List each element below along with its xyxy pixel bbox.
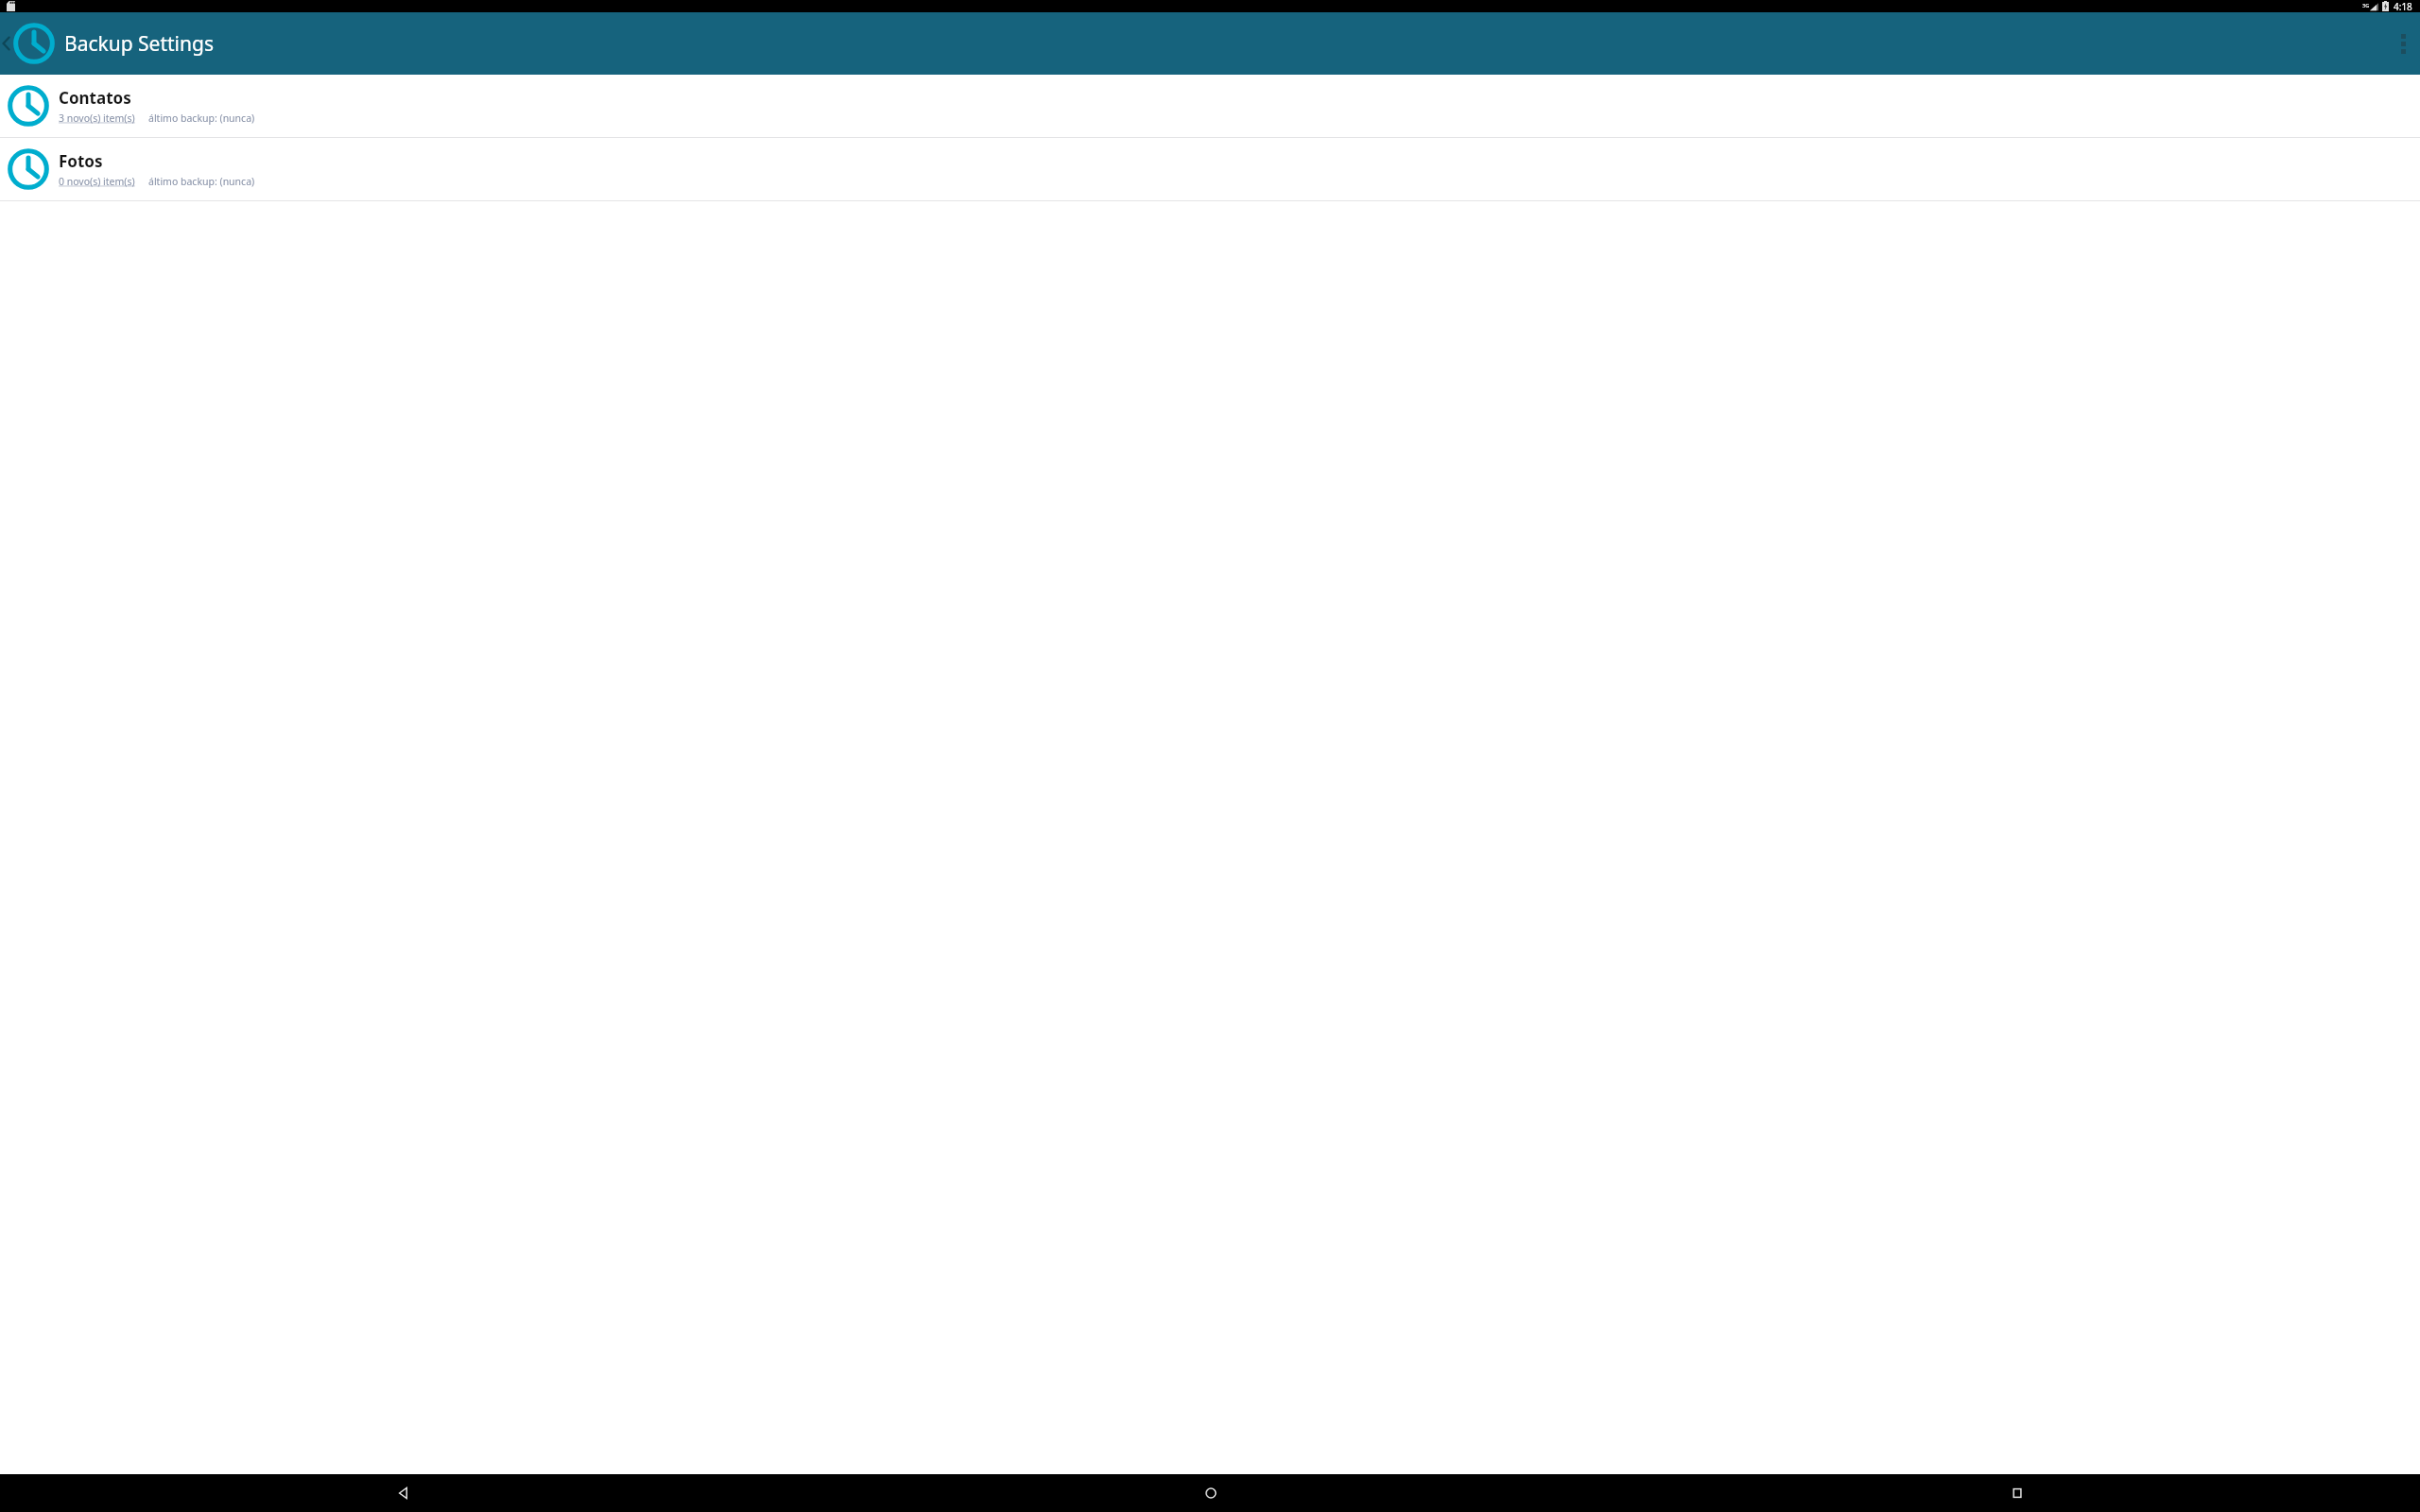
button[interactable]: 3 novo(s) item(s) <box>59 112 135 125</box>
staticText: 4:18 <box>2394 0 2412 12</box>
staticText: Contatos <box>59 87 131 109</box>
button[interactable]: Contatos <box>0 75 2420 137</box>
button[interactable]: Home <box>807 1474 1614 1512</box>
staticText: Backup Settings <box>64 30 214 58</box>
button[interactable]: Recent apps <box>1614 1474 2420 1512</box>
button[interactable]: 0 novo(s) item(s) <box>59 175 135 188</box>
staticText: Fotos <box>59 150 103 172</box>
button[interactable]: Fotos <box>0 138 2420 200</box>
staticText: 3G <box>2362 2 2370 9</box>
button[interactable]: Navigate up <box>0 12 214 75</box>
staticText: áltimo backup: (nunca) <box>148 112 255 125</box>
staticText: áltimo backup: (nunca) <box>148 175 255 188</box>
button[interactable]: Back <box>0 1474 807 1512</box>
button[interactable]: More options <box>2386 12 2420 75</box>
